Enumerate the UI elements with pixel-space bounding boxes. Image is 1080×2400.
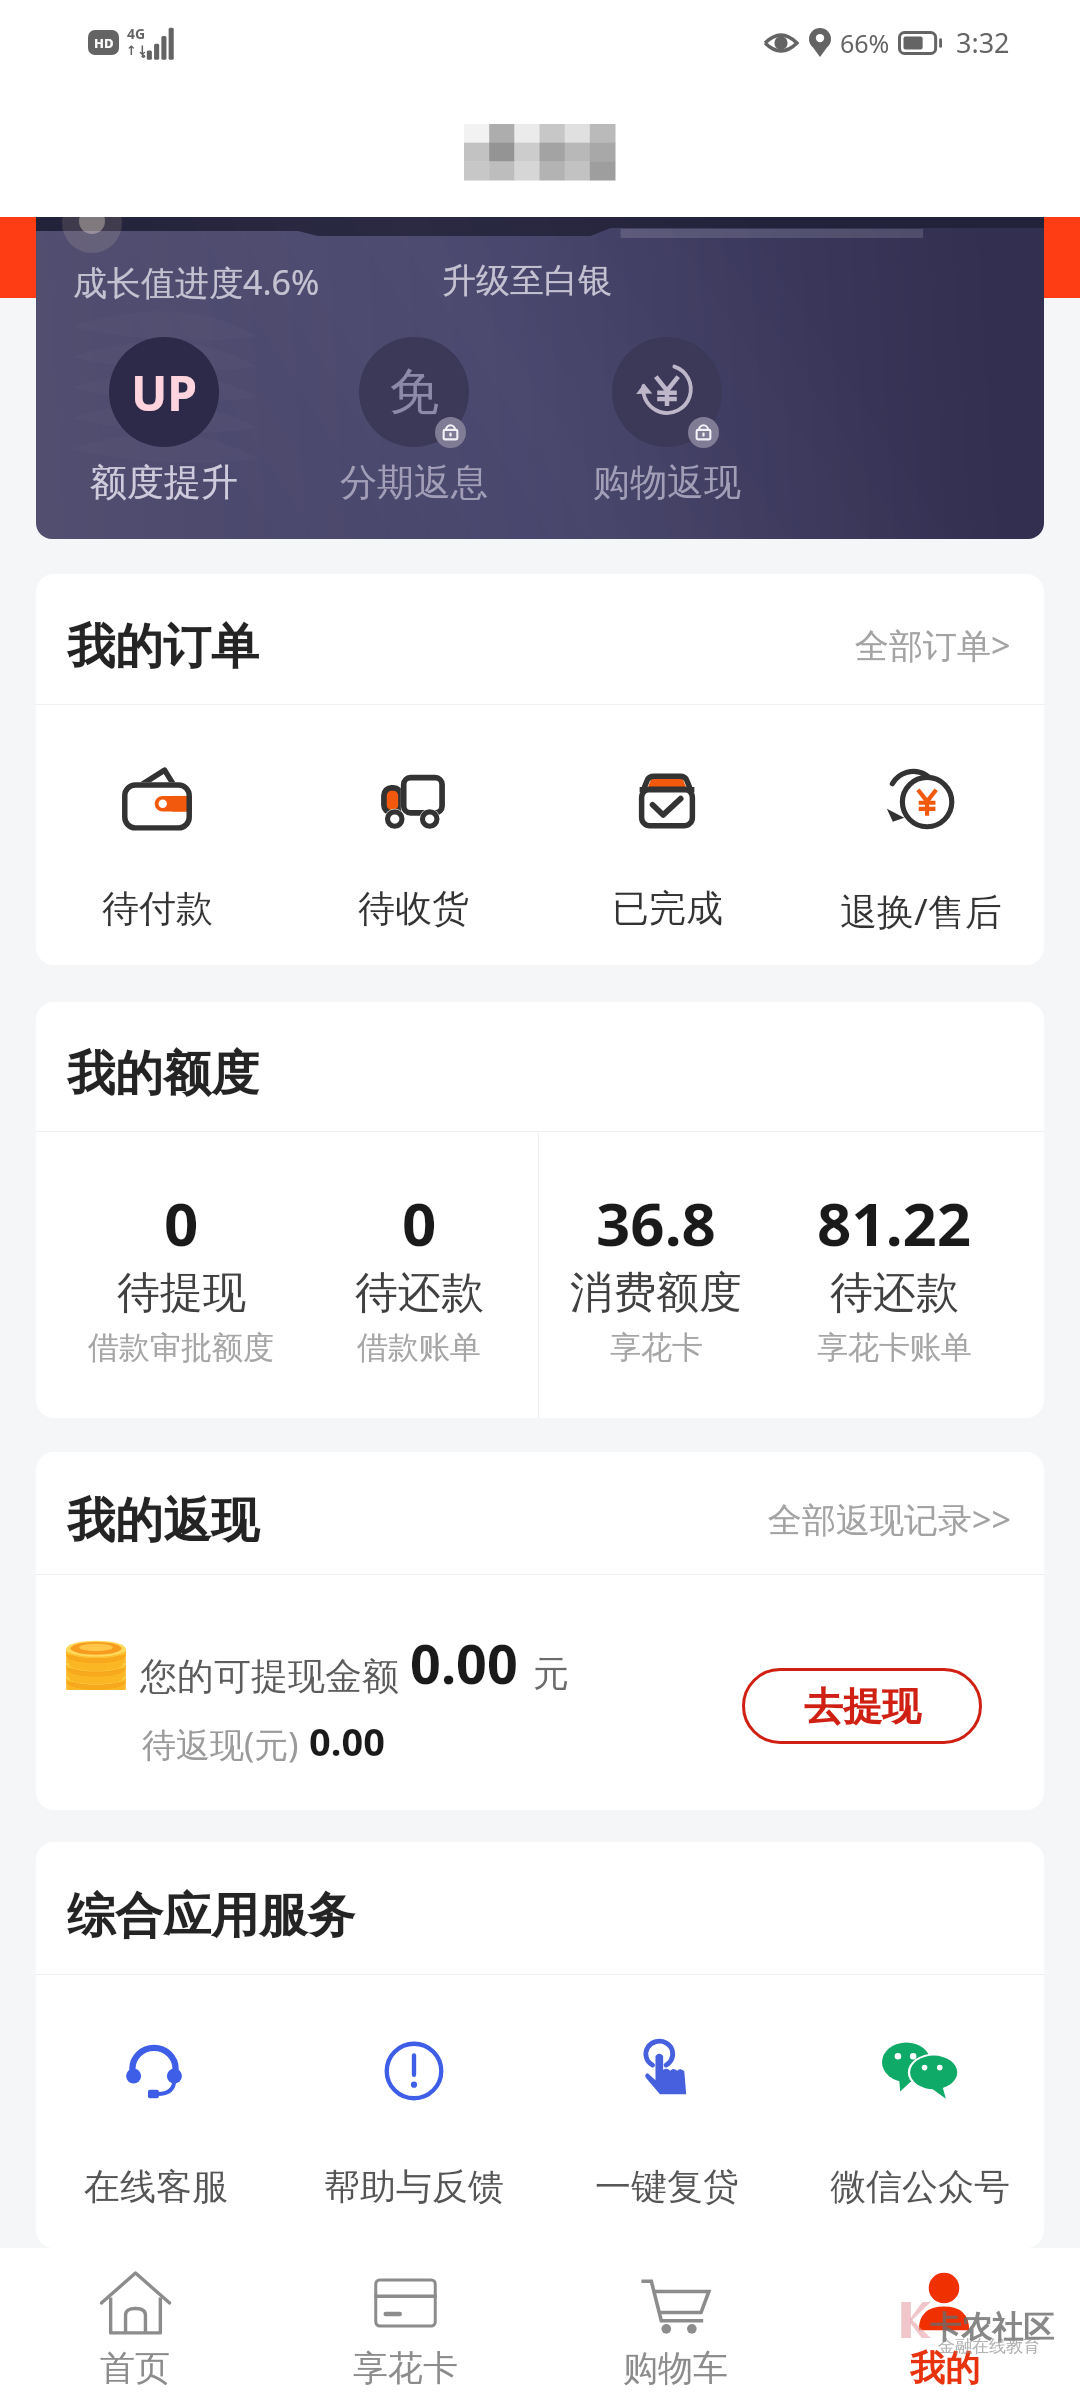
staticText: 借款账单	[357, 1328, 481, 1367]
button[interactable]: 0	[62, 1133, 300, 1418]
staticText: 0.00	[309, 1715, 385, 1767]
staticText: 全部订单>	[855, 622, 1011, 668]
button[interactable]: 微信公众号	[794, 2014, 1044, 2224]
staticText: 借款审批额度	[88, 1328, 274, 1367]
staticText: 购物返现	[593, 459, 741, 506]
button[interactable]: 购物返现	[582, 337, 752, 506]
staticText: 3:32	[956, 24, 1010, 61]
staticText: 36.8	[596, 1182, 716, 1264]
staticText: 升级至白银	[442, 259, 612, 302]
staticText: 0.00	[410, 1626, 518, 1700]
staticText: 消费额度	[570, 1266, 742, 1320]
staticText: 享花卡	[353, 2346, 458, 2390]
staticText: 额度提升	[90, 459, 238, 506]
staticText: 我的	[910, 2346, 980, 2390]
staticText: 我的返现	[67, 1491, 259, 1551]
staticText: 待还款	[355, 1266, 484, 1320]
staticText: 待收货	[358, 885, 469, 932]
staticText: ↑↓	[126, 43, 148, 58]
staticText: 全部返现记录>>	[768, 1496, 1011, 1542]
staticText: 81.22	[817, 1182, 972, 1264]
staticText: 分期返息	[340, 459, 488, 506]
button[interactable]: 享花卡	[270, 2248, 540, 2400]
staticText: 0	[402, 1182, 437, 1264]
staticText: 待还款	[830, 1266, 959, 1320]
staticText: 退换/售后	[840, 885, 1002, 936]
button[interactable]: 待付款	[36, 740, 283, 946]
button[interactable]: 待收货	[287, 740, 539, 946]
staticText: 在线客服	[84, 2164, 228, 2209]
staticText: 享花卡账单	[817, 1328, 972, 1367]
button[interactable]: 我的	[810, 2248, 1080, 2400]
button[interactable]: 81.22	[775, 1133, 1013, 1418]
button[interactable]: 购物车	[540, 2248, 810, 2400]
staticText: 成长值进度4.6%	[73, 259, 320, 305]
button[interactable]: 去提现	[742, 1668, 982, 1744]
button[interactable]: 退换/售后	[795, 740, 1044, 946]
staticText: 微信公众号	[830, 2164, 1010, 2209]
staticText: 元	[533, 1651, 569, 1696]
staticText: 综合应用服务	[67, 1886, 355, 1946]
staticText: 您的可提现金额	[140, 1653, 399, 1700]
staticText: 待提现	[117, 1266, 246, 1320]
staticText: 我的订单	[67, 617, 259, 677]
staticText: 0	[164, 1182, 199, 1264]
staticText: 已完成	[612, 885, 723, 932]
staticText: 我的额度	[67, 1044, 259, 1104]
staticText: 免	[389, 361, 439, 424]
button[interactable]: UP	[79, 337, 249, 506]
staticText: 购物车	[623, 2346, 728, 2390]
staticText: 4G	[127, 24, 146, 43]
staticText: 享花卡	[610, 1328, 703, 1367]
button[interactable]: 帮助与反馈	[288, 2014, 540, 2224]
staticText: 帮助与反馈	[324, 2164, 504, 2209]
button[interactable]: 一键复贷	[541, 2012, 793, 2224]
button[interactable]: 在线客服	[36, 2014, 282, 2224]
staticText: 待返现(元)	[142, 1721, 299, 1767]
staticText: 卡农社区	[930, 2308, 1054, 2347]
staticText: 一键复贷	[595, 2164, 739, 2209]
staticText: 金融在线教育	[938, 2336, 1040, 2357]
button[interactable]: 免	[329, 337, 499, 506]
staticText: 待付款	[102, 885, 213, 932]
button[interactable]: 已完成	[541, 740, 793, 946]
button[interactable]: 36.8	[537, 1133, 775, 1418]
staticText: UP	[131, 360, 198, 425]
staticText: 66%	[840, 26, 890, 60]
staticText: 去提现	[804, 1682, 921, 1731]
button[interactable]: 0	[300, 1133, 538, 1418]
staticText: 首页	[100, 2346, 170, 2390]
button[interactable]: 首页	[0, 2248, 270, 2400]
staticText: HD	[94, 34, 114, 52]
